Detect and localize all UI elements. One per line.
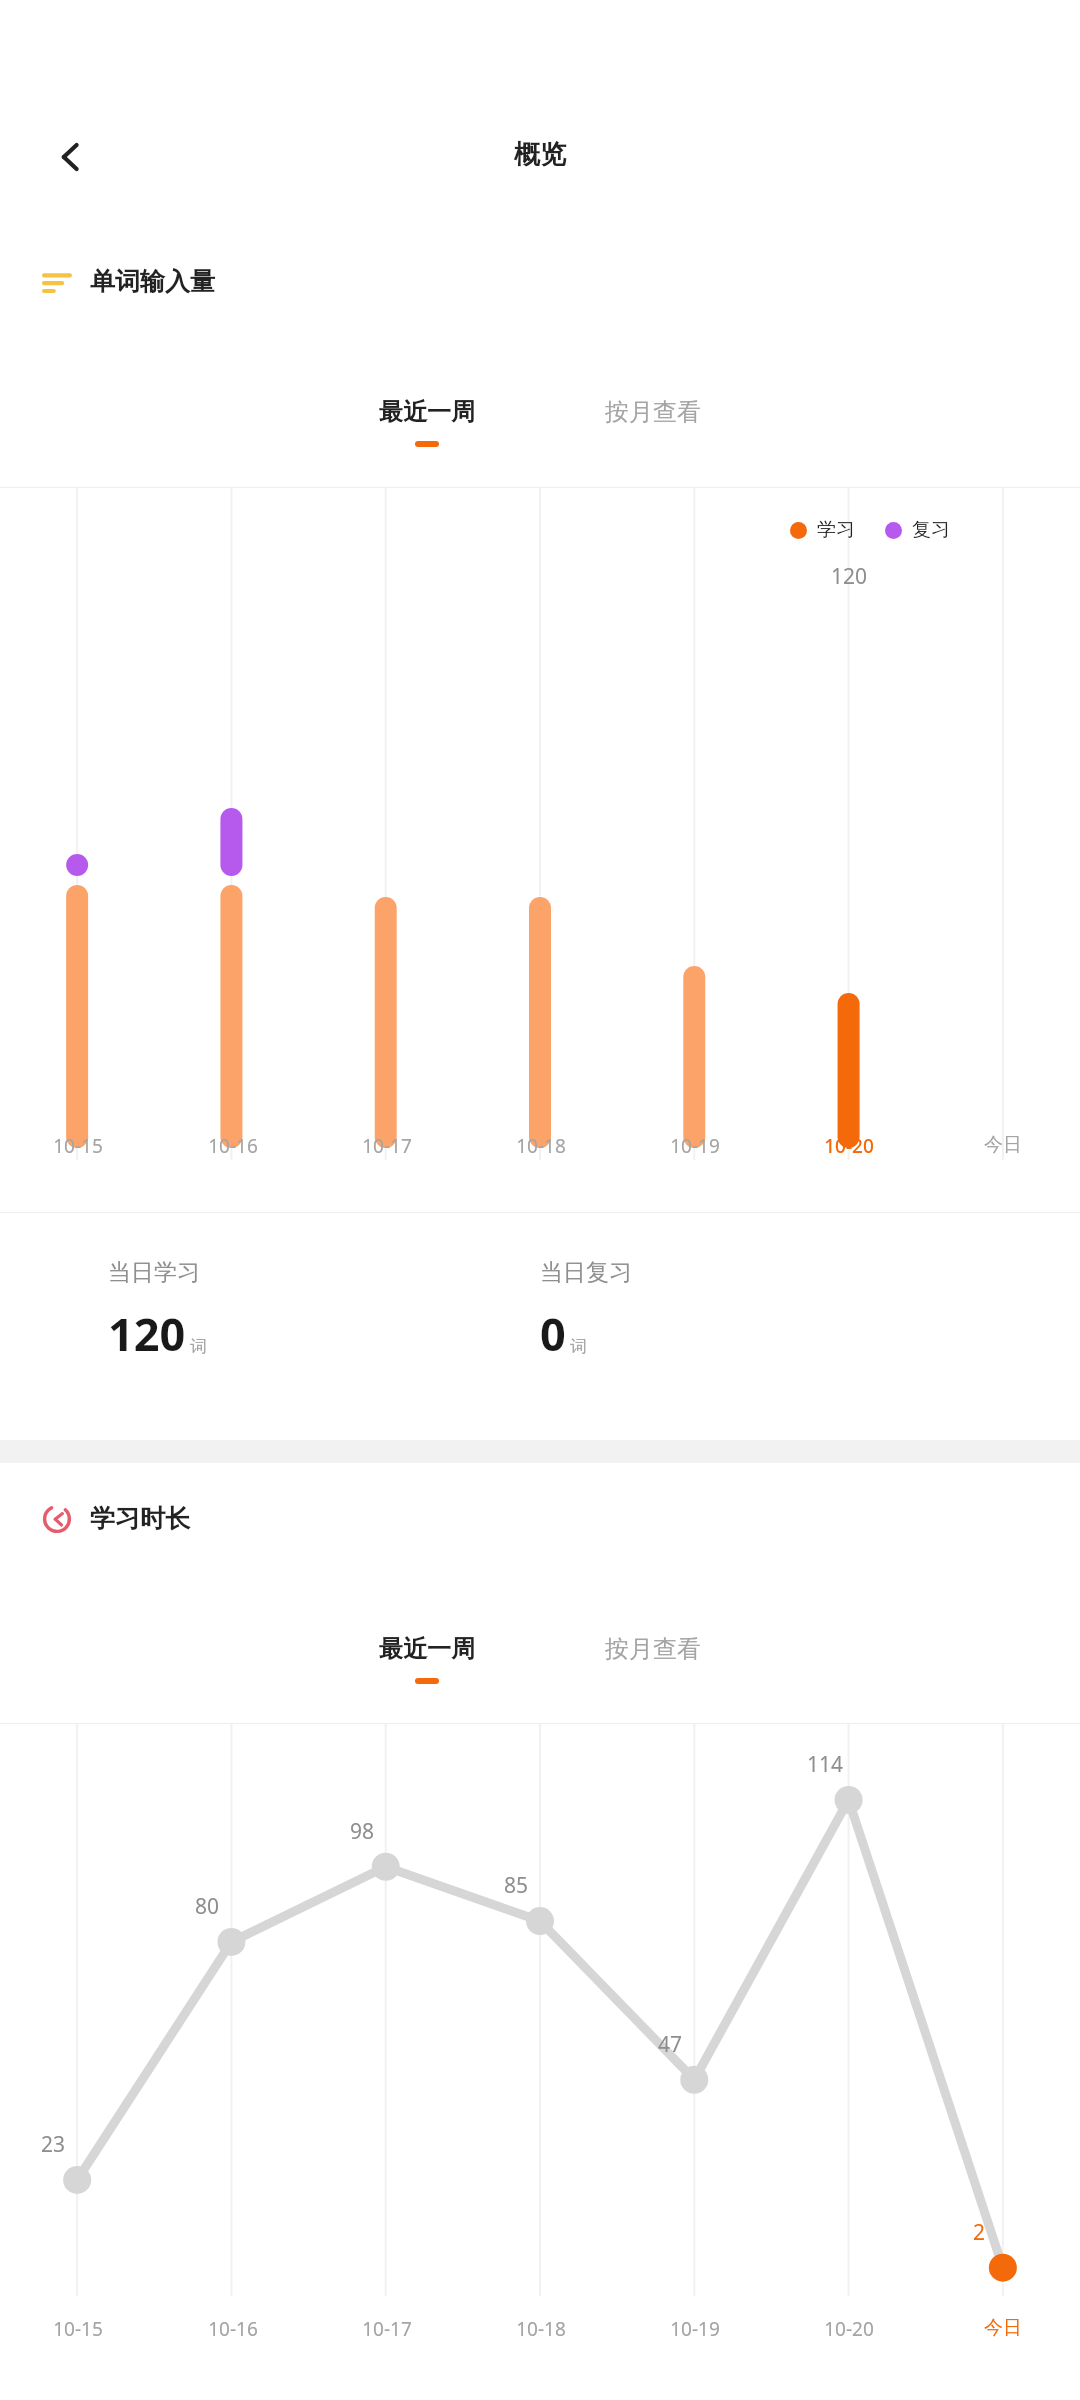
staticText: 10-19: [670, 1133, 720, 1159]
staticText: 词: [190, 1336, 207, 1357]
button[interactable]: 最近一周: [369, 1632, 485, 1686]
button[interactable]: 按月查看: [595, 1632, 711, 1686]
staticText: 概览: [514, 138, 566, 171]
staticText: 10-19: [670, 2316, 720, 2342]
staticText: 今日: [984, 1133, 1022, 1157]
staticText: 0: [540, 1303, 566, 1364]
staticText: 10-16: [208, 1133, 258, 1159]
staticText: 47: [658, 2030, 683, 2059]
button[interactable]: Back: [30, 116, 112, 198]
staticText: 最近一周: [379, 1634, 475, 1664]
staticText: 23: [41, 2130, 66, 2159]
staticText: 85: [504, 1871, 529, 1900]
staticText: 10-18: [516, 2316, 566, 2342]
staticText: 单词输入量: [90, 266, 215, 297]
button[interactable]: 120: [0, 488, 1080, 1212]
staticText: 10-20: [824, 2316, 874, 2342]
staticText: 当日复习: [540, 1258, 632, 1287]
staticText: 120: [108, 1303, 186, 1364]
staticText: 120: [831, 562, 868, 591]
staticText: 10-15: [53, 2316, 103, 2342]
staticText: 当日学习: [108, 1258, 200, 1287]
staticText: 10-20: [824, 1133, 874, 1159]
staticText: 10-17: [362, 2316, 412, 2342]
staticText: 学习时长: [90, 1503, 190, 1534]
button[interactable]: 按月查看: [595, 395, 711, 449]
staticText: 10-17: [362, 1133, 412, 1159]
staticText: 最近一周: [379, 397, 475, 427]
staticText: 按月查看: [605, 397, 701, 427]
staticText: 2: [973, 2218, 986, 2247]
staticText: 80: [195, 1892, 220, 1921]
staticText: 114: [807, 1750, 844, 1779]
staticText: 词: [570, 1336, 587, 1357]
staticText: 今日: [984, 2316, 1022, 2340]
button[interactable]: 最近一周: [369, 395, 485, 449]
staticText: 学习: [817, 518, 855, 542]
staticText: 10-16: [208, 2316, 258, 2342]
staticText: 按月查看: [605, 1634, 701, 1664]
staticText: 10-15: [53, 1133, 103, 1159]
staticText: 98: [350, 1817, 375, 1846]
staticText: 复习: [912, 518, 950, 542]
button[interactable]: 23: [0, 1724, 1080, 2400]
staticText: 10-18: [516, 1133, 566, 1159]
